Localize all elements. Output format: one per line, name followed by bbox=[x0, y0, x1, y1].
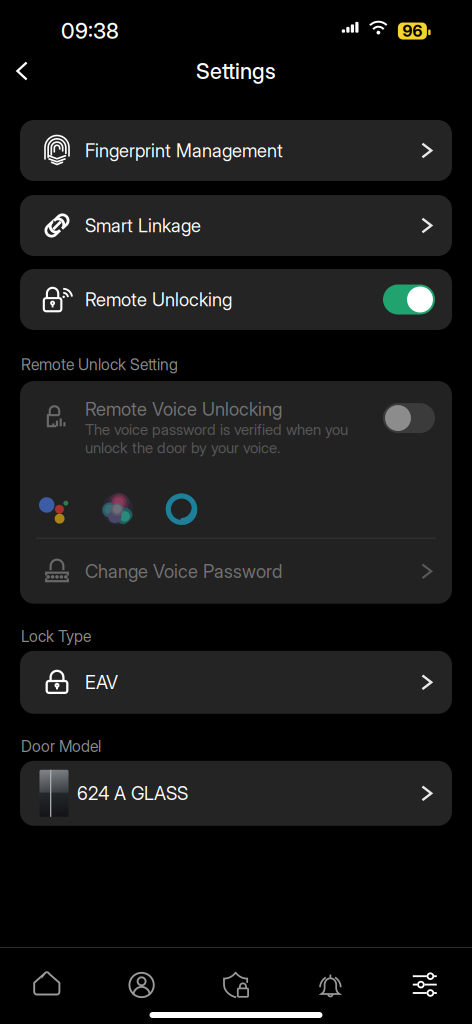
button[interactable]: Siri bbox=[101, 493, 134, 526]
button[interactable]: Google Assistant bbox=[37, 493, 70, 526]
staticText: 96 bbox=[402, 21, 422, 41]
button[interactable]: Remote Unlocking bbox=[20, 269, 452, 330]
staticText: EAV bbox=[85, 671, 118, 693]
button[interactable]: Back bbox=[0, 62, 46, 80]
button[interactable]: Settings bbox=[378, 958, 472, 1012]
staticText: Remote Unlock Setting bbox=[21, 355, 178, 374]
button[interactable]: Change Voice Password bbox=[20, 539, 452, 604]
staticText: Lock Type bbox=[21, 627, 91, 646]
button[interactable]: Home bbox=[0, 958, 94, 1012]
staticText: The voice password is verified when you … bbox=[85, 420, 348, 457]
staticText: Remote Voice Unlocking bbox=[85, 398, 282, 420]
staticText: 624 A GLASS bbox=[77, 782, 188, 804]
staticText: Change Voice Password bbox=[85, 560, 282, 582]
staticText: Remote Unlocking bbox=[85, 288, 232, 311]
staticText: Door Model bbox=[21, 737, 101, 756]
button[interactable]: 624 A GLASS bbox=[20, 761, 452, 826]
button[interactable]: Alexa bbox=[165, 493, 198, 526]
staticText: Fingerprint Management bbox=[85, 139, 283, 162]
button[interactable]: EAV bbox=[20, 651, 452, 714]
button[interactable]: Profile bbox=[94, 958, 189, 1012]
button[interactable]: Smart Linkage bbox=[20, 195, 452, 256]
staticText: Settings bbox=[196, 58, 276, 84]
button[interactable]: Fingerprint Management bbox=[20, 120, 452, 181]
button[interactable]: Security bbox=[189, 958, 283, 1012]
staticText: Smart Linkage bbox=[85, 214, 201, 237]
button[interactable]: Notifications bbox=[283, 958, 378, 1012]
staticText: 09:38 bbox=[61, 18, 119, 44]
